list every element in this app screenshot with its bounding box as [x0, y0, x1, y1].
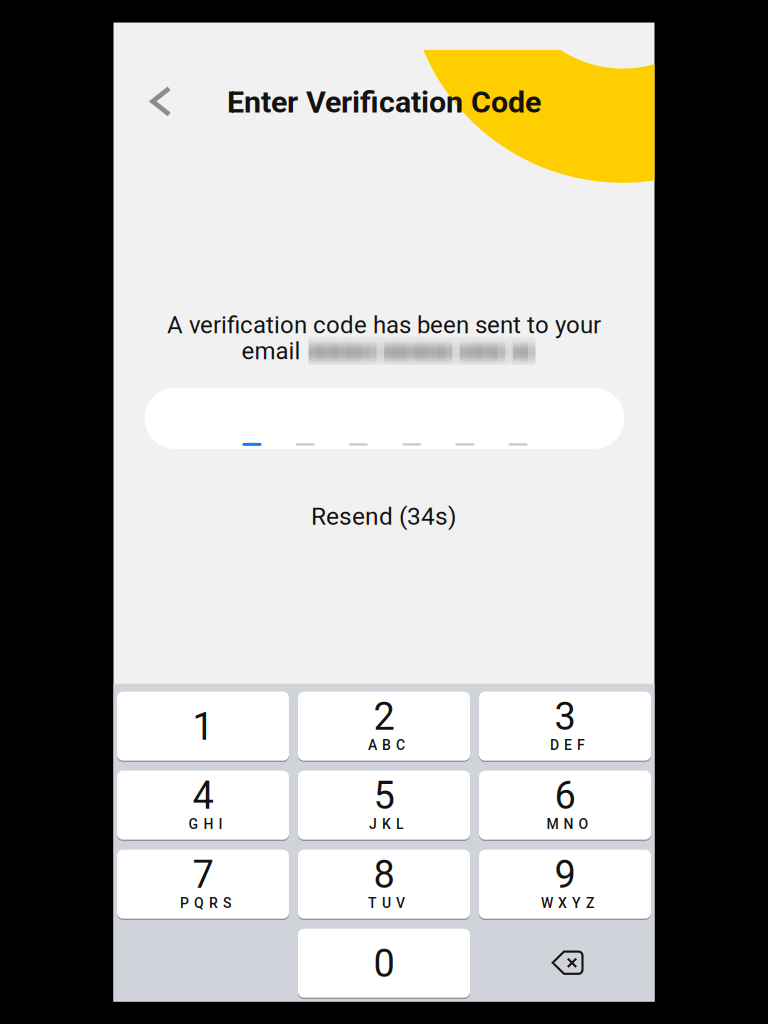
staticText: 4	[192, 773, 213, 818]
staticText: 0	[373, 941, 394, 986]
staticText: GHI	[189, 816, 223, 832]
button[interactable]: Resend (34s)	[264, 494, 504, 538]
staticText: 8	[373, 852, 394, 897]
button[interactable]: 7	[117, 850, 289, 919]
staticText: MNO	[547, 816, 589, 832]
button[interactable]: 8	[298, 850, 470, 919]
staticText: Resend (34s)	[311, 502, 457, 531]
button[interactable]: 6	[479, 771, 651, 840]
staticText: WXYZ	[541, 895, 594, 911]
button[interactable]: 0	[298, 929, 470, 998]
staticText: 9	[554, 852, 575, 897]
button[interactable]: 5	[298, 771, 470, 840]
button[interactable]: 3	[479, 692, 651, 761]
button[interactable]: 9	[479, 850, 651, 919]
staticText: TUV	[368, 895, 405, 911]
staticText: JKL	[369, 816, 404, 832]
staticText: 3	[554, 694, 575, 739]
button[interactable]: Delete	[479, 929, 651, 998]
staticText: ABC	[368, 737, 405, 753]
staticText: 1	[192, 704, 213, 749]
staticText: A verification code has been sent to you…	[167, 311, 601, 339]
button[interactable]: 2	[298, 692, 470, 761]
button[interactable]: 4	[117, 771, 289, 840]
staticText: 5	[373, 773, 394, 818]
staticText: DEF	[550, 737, 585, 753]
staticText: email	[241, 337, 300, 365]
button[interactable]: 1	[117, 692, 289, 761]
button[interactable]: Back	[133, 73, 189, 129]
staticText: Enter Verification Code	[227, 84, 541, 120]
staticText: 6	[554, 773, 575, 818]
staticText: 7	[192, 852, 213, 897]
staticText: PQRS	[180, 895, 231, 911]
staticText: 2	[373, 694, 394, 739]
